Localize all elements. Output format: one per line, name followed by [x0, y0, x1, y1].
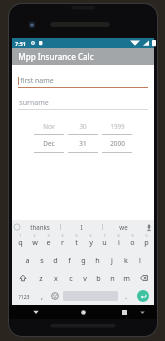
- staticText: y: [89, 237, 93, 247]
- staticText: 8: [117, 234, 120, 238]
- button[interactable]: c: [64, 270, 77, 286]
- button[interactable]: x: [49, 270, 63, 286]
- staticText: d: [53, 255, 58, 265]
- staticText: 1: [19, 234, 22, 238]
- staticText: ,: [41, 291, 43, 301]
- button[interactable]: s: [35, 252, 48, 268]
- button[interactable]: j: [105, 252, 118, 268]
- staticText: first name: [20, 76, 54, 86]
- staticText: .: [125, 291, 127, 301]
- button[interactable]: Enter: [133, 288, 153, 304]
- button[interactable]: h: [91, 252, 104, 268]
- staticText: u: [102, 237, 107, 247]
- staticText: we: [119, 223, 128, 231]
- staticText: 4: [61, 234, 64, 238]
- button[interactable]: 9: [126, 234, 139, 250]
- button[interactable]: Back: [31, 307, 41, 317]
- staticText: 30: [79, 122, 87, 130]
- button[interactable]: g: [77, 252, 90, 268]
- staticText: 0: [145, 234, 148, 238]
- button[interactable]: first name: [18, 74, 148, 88]
- staticText: 9: [131, 234, 134, 238]
- button[interactable]: l: [133, 252, 146, 268]
- staticText: c: [69, 273, 73, 283]
- button[interactable]: 5: [70, 234, 83, 250]
- button[interactable]: m: [120, 270, 133, 286]
- button[interactable]: Backspace: [134, 270, 153, 286]
- staticText: t: [75, 237, 78, 247]
- staticText: x: [54, 273, 58, 283]
- staticText: 6: [89, 234, 92, 238]
- button[interactable]: 0: [140, 234, 153, 250]
- button[interactable]: Recents: [119, 307, 129, 317]
- staticText: o: [130, 237, 135, 247]
- staticText: surname: [19, 98, 49, 108]
- button[interactable]: k: [119, 252, 132, 268]
- button[interactable]: 1999: [102, 122, 132, 153]
- staticText: b: [96, 273, 101, 283]
- staticText: j: [111, 255, 113, 265]
- button[interactable]: 30: [68, 122, 98, 153]
- button[interactable]: Hide keyboard: [138, 308, 147, 317]
- staticText: i: [118, 237, 120, 247]
- button[interactable]: 4: [56, 234, 69, 250]
- staticText: ?123: [18, 293, 30, 300]
- button[interactable]: Home: [78, 307, 88, 317]
- button[interactable]: 1: [13, 234, 27, 250]
- staticText: m: [123, 273, 130, 283]
- staticText: r: [61, 237, 64, 247]
- staticText: 7: [103, 234, 106, 238]
- button[interactable]: thanks: [20, 220, 60, 233]
- button[interactable]: ?123: [13, 288, 35, 304]
- staticText: 3: [47, 234, 50, 238]
- staticText: q: [18, 237, 23, 247]
- button[interactable]: we: [103, 220, 144, 233]
- button[interactable]: 2: [28, 234, 41, 250]
- staticText: Dec: [43, 139, 55, 148]
- button[interactable]: surname: [18, 96, 148, 110]
- button[interactable]: a: [20, 252, 34, 268]
- button[interactable]: I: [61, 220, 102, 233]
- staticText: e: [46, 237, 51, 247]
- staticText: thanks: [30, 223, 50, 231]
- button[interactable]: Shift: [13, 270, 33, 286]
- staticText: v: [83, 273, 87, 283]
- button[interactable]: Nov: [34, 122, 64, 153]
- button[interactable]: v: [78, 270, 91, 286]
- button[interactable]: ,: [36, 288, 48, 304]
- button[interactable]: Voice input: [144, 222, 154, 232]
- staticText: n: [110, 273, 115, 283]
- staticText: 2000: [110, 139, 125, 148]
- button[interactable]: 7: [98, 234, 111, 250]
- staticText: 2: [33, 234, 36, 238]
- button[interactable]: 8: [112, 234, 125, 250]
- staticText: l: [139, 255, 141, 265]
- button[interactable]: d: [49, 252, 62, 268]
- staticText: 31: [79, 139, 87, 148]
- staticText: p: [144, 237, 149, 247]
- button[interactable]: n: [106, 270, 119, 286]
- staticText: 1999: [110, 122, 125, 130]
- staticText: g: [81, 255, 86, 265]
- staticText: z: [39, 273, 43, 283]
- button[interactable]: Mpp Insurance Calc: [12, 48, 154, 65]
- staticText: Mpp Insurance Calc: [18, 51, 94, 62]
- button[interactable]: z: [34, 270, 48, 286]
- staticText: f: [68, 255, 71, 265]
- staticText: 5: [75, 234, 78, 238]
- button[interactable]: .: [120, 288, 132, 304]
- staticText: k: [124, 255, 128, 265]
- button[interactable]: f: [63, 252, 76, 268]
- button[interactable]: 3: [42, 234, 55, 250]
- staticText: a: [25, 255, 30, 265]
- staticText: w: [32, 237, 38, 247]
- staticText: I: [80, 223, 83, 231]
- button[interactable]: Emoji: [49, 288, 61, 304]
- button[interactable]: 6: [84, 234, 97, 250]
- staticText: h: [95, 255, 100, 265]
- button[interactable]: b: [92, 270, 105, 286]
- staticText: Nov: [43, 122, 55, 130]
- staticText: 7:51: [15, 40, 26, 47]
- staticText: s: [40, 255, 44, 265]
